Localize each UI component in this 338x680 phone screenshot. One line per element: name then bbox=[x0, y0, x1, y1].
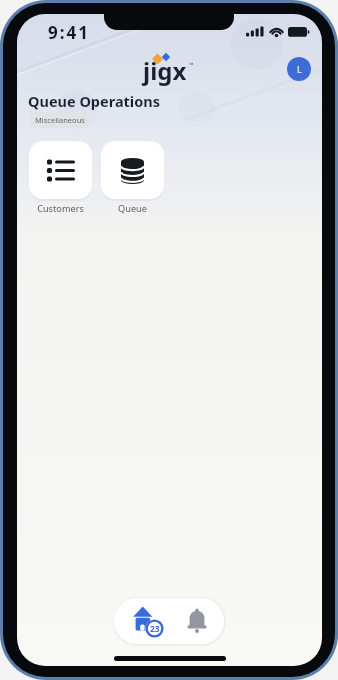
button[interactable] bbox=[180, 604, 214, 638]
staticText: jigx bbox=[143, 54, 187, 87]
button[interactable] bbox=[29, 141, 92, 199]
staticText: 23 bbox=[150, 623, 160, 635]
staticText: Queue bbox=[101, 202, 164, 215]
staticText: 9:41 bbox=[48, 21, 90, 44]
staticText: ™ bbox=[189, 61, 194, 69]
button[interactable] bbox=[101, 141, 164, 199]
staticText: Miscellaneous bbox=[35, 115, 85, 125]
button[interactable]: L bbox=[287, 57, 311, 81]
button[interactable]: 23 bbox=[131, 604, 169, 638]
staticText: L bbox=[297, 63, 302, 75]
staticText: Customers bbox=[29, 202, 92, 215]
staticText: Queue Operations bbox=[28, 91, 160, 111]
